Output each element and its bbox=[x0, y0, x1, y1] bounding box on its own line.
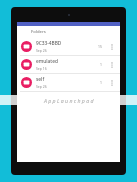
button[interactable]: More options bbox=[107, 42, 117, 52]
button[interactable]: More options bbox=[107, 78, 117, 88]
button[interactable]: self bbox=[17, 74, 120, 92]
staticText: 15 bbox=[98, 44, 102, 49]
staticText: emulated bbox=[36, 58, 58, 65]
staticText: 1 bbox=[100, 80, 102, 85]
staticText: Sep 26 bbox=[36, 48, 47, 53]
staticText: Sep 16 bbox=[36, 66, 47, 71]
button[interactable]: More options bbox=[107, 60, 117, 70]
staticText: Folders bbox=[31, 29, 46, 35]
button[interactable]: 9C33-4BBD bbox=[17, 38, 120, 56]
staticText: 9C33-4BBD bbox=[36, 40, 62, 47]
staticText: self bbox=[36, 76, 45, 83]
staticText: 1 bbox=[100, 62, 102, 67]
staticText: Sep 26 bbox=[36, 84, 47, 89]
staticText: A p p L a u n c h p a d bbox=[44, 97, 94, 104]
button[interactable]: emulated bbox=[17, 56, 120, 74]
